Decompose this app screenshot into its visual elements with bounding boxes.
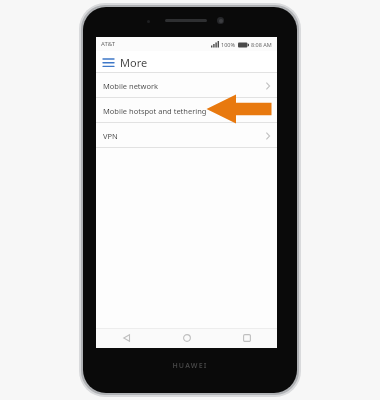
button[interactable]: Open navigation menu [96, 51, 120, 73]
staticText: VPN [103, 131, 118, 141]
button[interactable]: Mobile network [96, 73, 277, 98]
staticText: Mobile hotspot and tethering [103, 106, 207, 116]
staticText: 100% [221, 41, 236, 48]
button[interactable]: Back [96, 328, 157, 348]
staticText: Mobile network [103, 81, 159, 91]
staticText: AT&T [101, 40, 115, 48]
button[interactable]: Home [157, 328, 217, 348]
button[interactable]: Recent apps [217, 328, 277, 348]
staticText: HUAWEI [172, 361, 208, 371]
staticText: 8:08 AM [251, 41, 272, 48]
other: Pointer to Mobile hotspot and tethering [205, 94, 273, 124]
staticText: More [120, 55, 148, 70]
button[interactable]: Mobile hotspot and tethering [96, 98, 277, 123]
button[interactable]: VPN [96, 123, 277, 148]
